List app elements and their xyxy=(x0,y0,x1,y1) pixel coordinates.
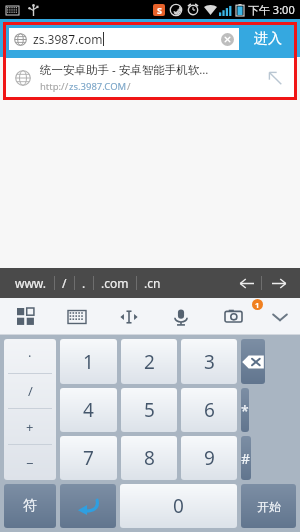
staticText: 4 xyxy=(83,397,94,423)
button[interactable]: 统一安卓助手 - 安卓智能手机软… xyxy=(6,58,294,97)
staticText: S xyxy=(157,4,162,16)
staticText: http:// xyxy=(40,80,69,93)
button[interactable]: zs.3987.com xyxy=(9,28,239,50)
staticText: * xyxy=(241,401,249,420)
button[interactable]: Apps xyxy=(0,298,51,335)
button[interactable]: 1 xyxy=(60,339,117,384)
staticText: www. xyxy=(15,275,47,291)
button[interactable]: * xyxy=(241,388,249,432)
button[interactable]: .com xyxy=(94,271,136,295)
button[interactable]: 0 xyxy=(120,484,237,528)
button[interactable]: Text select xyxy=(103,298,155,335)
staticText: . xyxy=(82,275,86,291)
staticText: 9 xyxy=(204,445,215,471)
staticText: 7 xyxy=(83,445,94,471)
button[interactable]: / xyxy=(4,374,56,408)
button[interactable]: Voice input xyxy=(155,298,207,335)
button[interactable]: 5 xyxy=(121,388,177,432)
staticText: 开始 xyxy=(257,499,281,514)
button[interactable]: Delete xyxy=(241,339,265,384)
staticText: 统一安卓助手 - 安卓智能手机软… xyxy=(40,62,209,78)
button[interactable]: 7 xyxy=(60,436,117,480)
staticText: 5 xyxy=(144,397,155,423)
button[interactable]: . xyxy=(75,271,93,295)
button[interactable]: Keyboard layout xyxy=(51,298,103,335)
staticText: .com xyxy=(101,275,129,291)
staticText: · xyxy=(28,347,32,365)
button[interactable]: 进入 xyxy=(242,25,294,53)
staticText: 6 xyxy=(204,397,215,423)
button[interactable]: .cn xyxy=(137,271,168,295)
staticText: 0 xyxy=(173,493,184,519)
button[interactable]: 3 xyxy=(181,339,237,384)
staticText: 2 xyxy=(144,349,155,375)
staticText: 1 xyxy=(255,300,260,310)
staticText: − xyxy=(26,454,34,472)
staticText: 进入 xyxy=(254,30,282,48)
button[interactable]: 4 xyxy=(60,388,117,432)
button[interactable]: www. xyxy=(8,271,54,295)
staticText: zs.3987.COM xyxy=(69,80,127,93)
button[interactable]: Return xyxy=(60,484,116,528)
staticText: 1 xyxy=(83,349,94,375)
button[interactable]: 2 xyxy=(121,339,177,384)
button[interactable]: 9 xyxy=(181,436,237,480)
staticText: # xyxy=(241,449,251,468)
button[interactable]: Camera input xyxy=(225,298,242,335)
staticText: / xyxy=(62,275,67,291)
button[interactable]: 6 xyxy=(181,388,237,432)
staticText: 下午 3:00 xyxy=(248,2,295,17)
staticText: / xyxy=(28,382,33,400)
staticText: 8 xyxy=(144,445,155,471)
staticText: zs.3987.com xyxy=(33,31,103,47)
button[interactable]: Clear text xyxy=(221,33,234,46)
button[interactable]: 开始 xyxy=(241,484,296,528)
button[interactable]: Fill suggestion xyxy=(260,63,290,93)
button[interactable]: / xyxy=(55,271,74,295)
staticText: 3 xyxy=(204,349,215,375)
staticText: + xyxy=(26,418,34,436)
button[interactable]: · xyxy=(4,339,56,373)
button[interactable]: 符 xyxy=(4,484,56,528)
button[interactable]: + xyxy=(4,409,56,444)
button[interactable]: Previous field xyxy=(231,268,261,298)
staticText: 符 xyxy=(23,497,37,515)
button[interactable]: − xyxy=(4,445,56,480)
staticText: .cn xyxy=(144,275,161,291)
staticText: / xyxy=(127,80,131,93)
button[interactable]: 8 xyxy=(121,436,177,480)
button[interactable]: Hide keyboard xyxy=(259,298,300,335)
button[interactable]: # xyxy=(241,436,251,480)
button[interactable]: Next field xyxy=(262,268,296,298)
